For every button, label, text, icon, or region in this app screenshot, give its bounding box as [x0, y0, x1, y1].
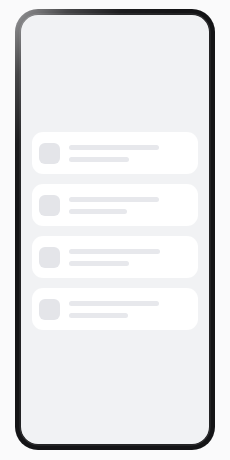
button[interactable]: Loading list item	[32, 184, 198, 226]
button[interactable]: Loading list item	[32, 132, 198, 174]
button[interactable]: Loading list item	[32, 288, 198, 330]
button[interactable]: Loading list item	[32, 236, 198, 278]
